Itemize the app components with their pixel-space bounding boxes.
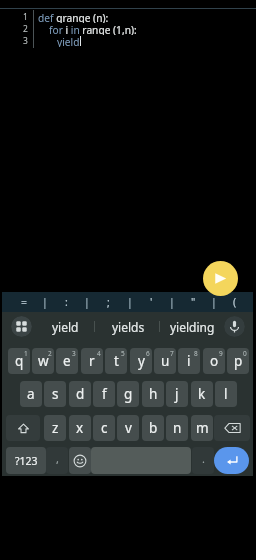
staticText: o xyxy=(210,352,219,370)
button[interactable]: l xyxy=(215,381,237,407)
staticText: 5 xyxy=(121,349,125,358)
staticText: yields xyxy=(112,319,145,335)
button[interactable]: a xyxy=(20,381,42,407)
button[interactable]: f xyxy=(93,381,115,407)
staticText: 1 xyxy=(24,349,28,358)
button[interactable]: | xyxy=(35,292,55,312)
staticText: y xyxy=(138,352,145,370)
button[interactable]: , xyxy=(46,447,68,474)
button[interactable]: : xyxy=(56,292,76,312)
staticText: t xyxy=(114,352,119,370)
button[interactable]: ' xyxy=(141,292,161,312)
staticText: x xyxy=(76,419,84,437)
button[interactable]: z xyxy=(44,415,66,441)
staticText: yield xyxy=(52,319,79,335)
button[interactable]: d xyxy=(69,381,91,407)
staticText: z xyxy=(52,419,59,437)
button[interactable]: | xyxy=(77,292,97,312)
button[interactable]: Run xyxy=(203,261,238,296)
button[interactable]: v xyxy=(117,415,139,441)
staticText: m xyxy=(196,419,209,437)
button[interactable]: q xyxy=(8,348,30,374)
staticText: | xyxy=(42,295,48,309)
staticText: 4 xyxy=(97,349,101,358)
button[interactable]: c xyxy=(93,415,115,441)
staticText: u xyxy=(161,352,170,370)
button[interactable]: g xyxy=(117,381,139,407)
button[interactable]: ( xyxy=(225,292,245,312)
staticText: n xyxy=(173,419,182,437)
button[interactable]: ?123 xyxy=(6,447,46,474)
staticText: 7 xyxy=(170,349,174,358)
staticText: g xyxy=(124,385,133,403)
button[interactable]: Emoji xyxy=(69,447,91,474)
button[interactable]: | xyxy=(204,292,224,312)
button[interactable]: h xyxy=(142,381,164,407)
button[interactable]: k xyxy=(191,381,213,407)
staticText: 1 xyxy=(23,11,28,23)
button[interactable]: p xyxy=(227,348,249,374)
staticText: yielding xyxy=(170,319,215,335)
staticText: | xyxy=(211,295,217,309)
button[interactable]: y xyxy=(130,348,152,374)
staticText: e xyxy=(63,352,71,370)
staticText: h xyxy=(149,385,158,403)
button[interactable]: | xyxy=(162,292,182,312)
staticText: 9 xyxy=(219,349,223,358)
button[interactable]: e xyxy=(56,348,78,374)
staticText: c xyxy=(101,419,108,437)
staticText: p xyxy=(234,352,243,370)
button[interactable]: b xyxy=(142,415,164,441)
button[interactable]: yield xyxy=(36,312,94,341)
button[interactable]: m xyxy=(191,415,213,441)
button[interactable]: w xyxy=(32,348,54,374)
staticText: " xyxy=(191,295,196,309)
staticText: 2 xyxy=(48,349,52,358)
staticText: b xyxy=(149,419,158,437)
button[interactable]: x xyxy=(69,415,91,441)
button[interactable]: t xyxy=(105,348,127,374)
button[interactable]: o xyxy=(203,348,225,374)
staticText: s xyxy=(52,385,59,403)
staticText: q xyxy=(15,352,24,370)
button[interactable]: yielding xyxy=(163,312,222,341)
staticText: yield xyxy=(57,35,80,47)
staticText: a xyxy=(27,385,35,403)
staticText: w xyxy=(38,352,49,370)
staticText: | xyxy=(127,295,133,309)
button[interactable]: n xyxy=(166,415,188,441)
button[interactable]: Keyboard options xyxy=(11,316,32,337)
staticText: l xyxy=(224,385,228,403)
staticText: 3 xyxy=(23,35,28,47)
staticText: j xyxy=(175,385,179,403)
button[interactable]: = xyxy=(14,292,34,312)
staticText: . xyxy=(202,451,205,466)
staticText: def qrange (n): xyxy=(38,11,109,23)
button[interactable]: | xyxy=(120,292,140,312)
button[interactable]: s xyxy=(44,381,66,407)
button[interactable]: Enter xyxy=(214,447,249,474)
button[interactable]: u xyxy=(154,348,176,374)
staticText: v xyxy=(125,419,132,437)
button[interactable]: . xyxy=(192,447,214,474)
staticText: = xyxy=(21,295,28,309)
button[interactable]: r xyxy=(81,348,103,374)
staticText: r xyxy=(89,352,95,370)
button[interactable]: Voice input xyxy=(224,316,245,337)
staticText: | xyxy=(169,295,175,309)
button[interactable]: Backspace xyxy=(214,415,250,441)
staticText: ( xyxy=(233,295,237,309)
button[interactable]: ; xyxy=(98,292,118,312)
staticText: k xyxy=(198,385,206,403)
staticText: 2 xyxy=(23,23,28,35)
staticText: , xyxy=(56,451,59,466)
button[interactable]: Shift xyxy=(6,415,40,441)
button[interactable]: " xyxy=(183,292,203,312)
button[interactable]: yields xyxy=(95,312,162,341)
button[interactable]: j xyxy=(166,381,188,407)
button[interactable]: i xyxy=(178,348,200,374)
staticText: 0 xyxy=(243,349,247,358)
staticText: | xyxy=(84,295,90,309)
staticText: ?123 xyxy=(15,454,38,468)
